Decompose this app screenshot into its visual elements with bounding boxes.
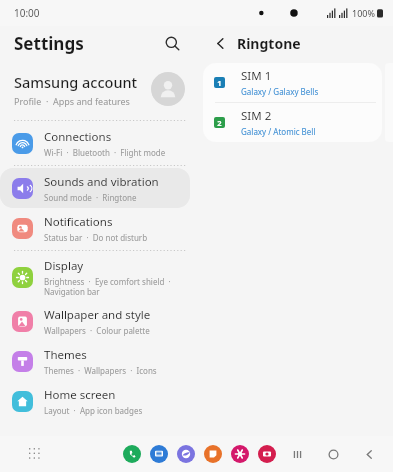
staticText: Galaxy / Galaxy Bells bbox=[241, 86, 319, 97]
staticText: Display bbox=[44, 258, 84, 274]
staticText: Notifications bbox=[44, 214, 113, 230]
button[interactable]: Notifications bbox=[0, 208, 190, 248]
staticText: Status bar · Do not disturb bbox=[44, 232, 148, 243]
staticText: Themes bbox=[44, 347, 87, 363]
staticText: Wallpaper and style bbox=[44, 307, 151, 323]
staticText: Ringtone bbox=[237, 34, 301, 53]
button[interactable]: Home bbox=[323, 444, 343, 464]
button[interactable]: Recents bbox=[287, 444, 307, 464]
staticText: Brightness · Eye comfort shield · Naviga… bbox=[44, 276, 171, 297]
staticText: 1 bbox=[217, 78, 222, 88]
button[interactable]: Notes bbox=[204, 445, 222, 463]
staticText: SIM 1 bbox=[241, 68, 272, 84]
button[interactable]: Gallery bbox=[231, 445, 249, 463]
staticText: Galaxy / Atomic Bell bbox=[241, 126, 316, 137]
button[interactable]: Samsung account bbox=[0, 60, 199, 118]
button[interactable]: Camera bbox=[258, 445, 276, 463]
button[interactable]: Apps bbox=[24, 443, 46, 465]
staticText: Settings bbox=[14, 32, 84, 55]
staticText: Samsung account bbox=[14, 72, 138, 92]
button[interactable]: 1 bbox=[203, 63, 382, 102]
staticText: 2 bbox=[217, 118, 222, 128]
staticText: Wallpapers · Colour palette bbox=[44, 325, 150, 336]
button[interactable]: Back bbox=[207, 30, 233, 56]
button[interactable]: Themes bbox=[0, 341, 190, 381]
staticText: Layout · App icon badges bbox=[44, 405, 143, 416]
button[interactable]: Display bbox=[0, 253, 190, 301]
staticText: Connections bbox=[44, 129, 112, 145]
staticText: 100% bbox=[352, 7, 375, 19]
button[interactable]: Internet bbox=[177, 445, 195, 463]
button[interactable]: Back bbox=[359, 444, 379, 464]
staticText: Themes · Wallpapers · Icons bbox=[44, 365, 157, 376]
button[interactable]: Wallpaper and style bbox=[0, 301, 190, 341]
button[interactable]: Sounds and vibration bbox=[0, 168, 190, 208]
staticText: Home screen bbox=[44, 387, 116, 403]
staticText: Profile · Apps and features bbox=[14, 95, 130, 107]
staticText: 10:00 bbox=[14, 6, 40, 20]
button[interactable]: Home screen bbox=[0, 381, 190, 421]
staticText: Wi-Fi · Bluetooth · Flight mode bbox=[44, 147, 166, 158]
button[interactable]: Search bbox=[159, 30, 185, 56]
staticText: Sounds and vibration bbox=[44, 174, 159, 190]
button[interactable]: Messages bbox=[150, 445, 168, 463]
staticText: Sound mode · Ringtone bbox=[44, 192, 137, 203]
staticText: SIM 2 bbox=[241, 108, 272, 124]
button[interactable]: 2 bbox=[203, 103, 382, 142]
button[interactable]: Connections bbox=[0, 123, 190, 163]
button[interactable]: Phone bbox=[123, 445, 141, 463]
